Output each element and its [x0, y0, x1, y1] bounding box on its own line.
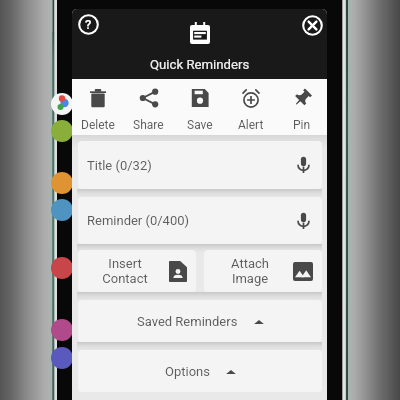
- button[interactable]: Share: [123, 79, 174, 136]
- button[interactable]: Pin: [276, 79, 327, 136]
- button[interactable]: Title (0/32): [78, 141, 322, 189]
- button[interactable]: Voice input: [291, 153, 315, 177]
- staticText: Delete: [81, 118, 115, 132]
- button[interactable]: Alert: [225, 79, 276, 136]
- button[interactable]: Attach Image: [204, 250, 322, 292]
- button[interactable]: Reminder (0/400): [78, 197, 322, 244]
- staticText: Attach Image: [207, 256, 293, 286]
- button[interactable]: Voice input: [291, 209, 315, 233]
- button[interactable]: Save: [174, 79, 225, 136]
- staticText: Share: [133, 118, 164, 132]
- staticText: Reminder (0/400): [87, 213, 190, 228]
- staticText: Pin: [293, 118, 311, 132]
- staticText: Alert: [238, 118, 264, 132]
- staticText: Title (0/32): [87, 158, 152, 173]
- button[interactable]: Saved Reminders: [78, 300, 322, 342]
- button[interactable]: Help: [78, 14, 99, 35]
- staticText: Save: [187, 118, 213, 132]
- button[interactable]: Insert Contact: [78, 250, 196, 292]
- staticText: Options: [165, 364, 210, 379]
- staticText: ?: [85, 17, 92, 32]
- staticText: Quick Reminders: [150, 57, 250, 72]
- staticText: Insert Contact: [81, 256, 169, 286]
- button[interactable]: Delete: [72, 79, 123, 136]
- button[interactable]: Options: [78, 350, 322, 392]
- staticText: Saved Reminders: [137, 314, 238, 329]
- button[interactable]: Close: [302, 15, 323, 36]
